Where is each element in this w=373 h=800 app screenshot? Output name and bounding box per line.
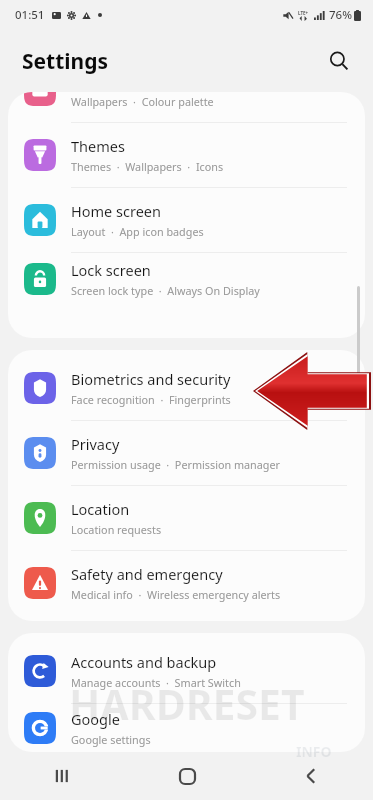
button[interactable]: Wallpaper bbox=[8, 92, 365, 122]
button[interactable]: Themes bbox=[8, 123, 365, 187]
staticText: 76% bbox=[329, 7, 352, 23]
staticText: Privacy bbox=[71, 434, 120, 454]
button[interactable]: Accounts and backup bbox=[8, 639, 365, 703]
staticText: 01:51 bbox=[15, 7, 45, 23]
staticText: Safety and emergency bbox=[71, 564, 223, 584]
button[interactable]: Home screen bbox=[8, 188, 365, 252]
staticText: Manage accounts · Smart Switch bbox=[71, 675, 241, 690]
button[interactable]: Privacy bbox=[8, 421, 365, 485]
staticText: Google bbox=[71, 709, 120, 729]
button[interactable]: Search bbox=[319, 41, 359, 81]
button[interactable]: Lock screen bbox=[8, 253, 365, 304]
staticText: Wallpapers · Colour palette bbox=[71, 94, 214, 109]
staticText: Accounts and backup bbox=[71, 652, 217, 672]
staticText: Lock screen bbox=[71, 260, 151, 280]
button[interactable]: Google bbox=[8, 704, 365, 752]
staticText: INFO bbox=[296, 742, 332, 761]
staticText: HARDRESET bbox=[69, 676, 305, 732]
button[interactable]: Location bbox=[8, 486, 365, 550]
staticText: Layout · App icon badges bbox=[71, 224, 204, 239]
button[interactable]: Recent apps bbox=[0, 752, 125, 800]
button[interactable]: Home bbox=[125, 752, 249, 800]
button[interactable]: Safety and emergency bbox=[8, 551, 365, 615]
staticText: Themes bbox=[71, 136, 125, 156]
button[interactable]: Back bbox=[249, 752, 373, 800]
staticText: Google settings bbox=[71, 732, 151, 747]
staticText: Location bbox=[71, 499, 130, 519]
staticText: Home screen bbox=[71, 201, 161, 221]
staticText: Themes · Wallpapers · Icons bbox=[71, 159, 224, 174]
staticText: Face recognition · Fingerprints bbox=[71, 392, 231, 407]
staticText: Permission usage · Permission manager bbox=[71, 457, 281, 472]
staticText: Location requests bbox=[71, 522, 162, 537]
staticText: Settings bbox=[22, 47, 109, 76]
staticText: LTE+ bbox=[298, 10, 309, 16]
staticText: Biometrics and security bbox=[71, 369, 231, 389]
button[interactable]: Biometrics and security bbox=[8, 356, 365, 420]
staticText: Screen lock type · Always On Display bbox=[71, 283, 260, 298]
staticText: Medical info · Wireless emergency alerts bbox=[71, 587, 281, 602]
